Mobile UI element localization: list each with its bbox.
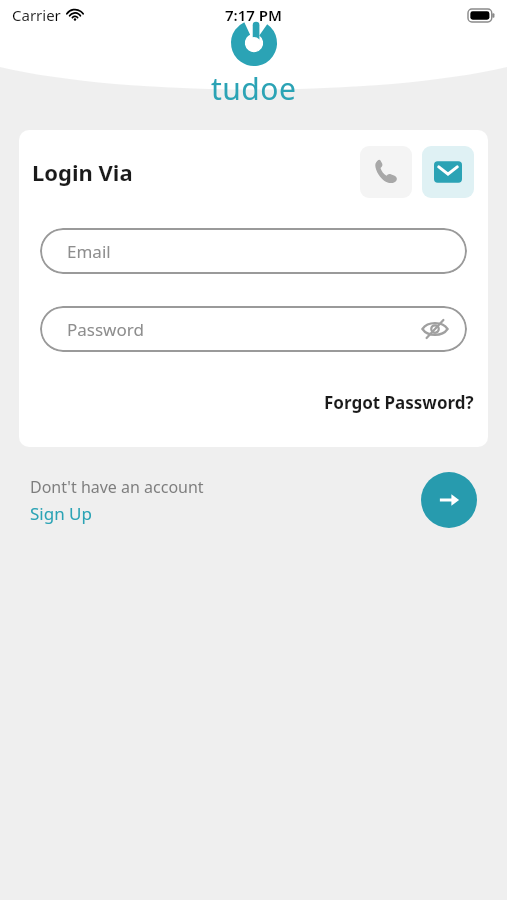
staticText: tudoe	[211, 68, 297, 109]
staticText: Carrier	[12, 5, 61, 25]
button[interactable]: Password	[40, 306, 467, 352]
staticText: 7:17 PM	[225, 5, 282, 25]
staticText: Login Via	[32, 157, 133, 187]
button[interactable]: Forgot Password?	[320, 388, 478, 417]
staticText: Email	[67, 240, 111, 263]
staticText: Dont't have an account	[30, 476, 204, 498]
button[interactable]: Continue	[421, 472, 477, 528]
button[interactable]: Login via phone	[360, 146, 412, 198]
staticText: Sign Up	[30, 502, 92, 525]
button[interactable]: Show password	[417, 311, 453, 347]
button[interactable]: Sign Up	[30, 502, 92, 525]
button[interactable]: Email	[40, 228, 467, 274]
staticText: Forgot Password?	[324, 391, 474, 414]
staticText: Password	[67, 318, 144, 341]
button[interactable]: Login via email	[422, 146, 474, 198]
